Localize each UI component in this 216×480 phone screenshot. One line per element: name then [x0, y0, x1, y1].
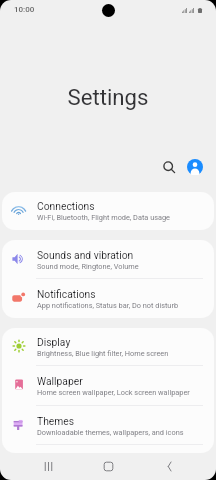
button[interactable]: Themes	[2, 406, 214, 445]
staticText: Brightness, Blue light filter, Home scre…	[37, 349, 169, 358]
staticText: Sound mode, Ringtone, Volume	[37, 262, 139, 271]
staticText: Wallpaper	[37, 375, 83, 387]
staticText: Home screen wallpaper, Lock screen wallp…	[37, 388, 190, 397]
button[interactable]: Search	[156, 154, 182, 180]
button[interactable]: Sounds and vibration	[2, 240, 214, 279]
staticText: Themes	[37, 415, 75, 427]
staticText: Sounds and vibration	[37, 249, 134, 261]
staticText: Connections	[37, 200, 95, 212]
button[interactable]: Home	[93, 452, 123, 480]
staticText: Notifications	[37, 288, 96, 300]
staticText: Wi-Fi, Bluetooth, Flight mode, Data usag…	[37, 213, 171, 222]
staticText: Settings	[67, 84, 149, 110]
staticText: Display	[37, 336, 71, 348]
button[interactable]: Recents	[33, 452, 63, 480]
button[interactable]: Wallpaper	[2, 366, 214, 406]
button[interactable]: Account	[182, 154, 208, 180]
button[interactable]: Display	[2, 328, 214, 366]
button[interactable]: Notifications	[2, 279, 214, 318]
staticText: App notifications, Status bar, Do not di…	[37, 301, 179, 310]
button[interactable]: Connections	[2, 192, 214, 230]
button[interactable]: Back	[153, 452, 183, 480]
staticText: 10:00	[14, 5, 35, 14]
staticText: Downloadable themes, wallpapers, and ico…	[37, 428, 184, 437]
